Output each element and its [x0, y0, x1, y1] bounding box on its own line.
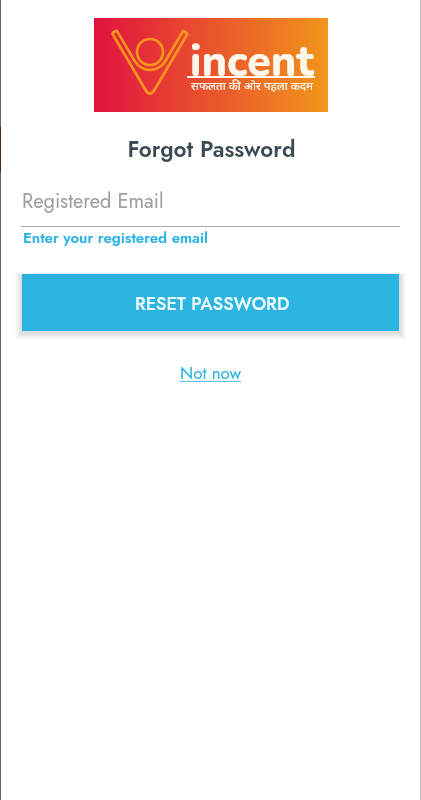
button[interactable]: Not now: [180, 361, 242, 386]
staticText: incent: [190, 33, 314, 92]
button[interactable]: RESET PASSWORD: [22, 274, 399, 331]
staticText: Registered Email: [22, 187, 164, 216]
staticText: सफलता की ओर पहला कदम: [191, 79, 314, 94]
staticText: RESET PASSWORD: [135, 291, 290, 317]
staticText: Enter your registered email: [23, 227, 208, 249]
staticText: Forgot Password: [1, 133, 421, 166]
